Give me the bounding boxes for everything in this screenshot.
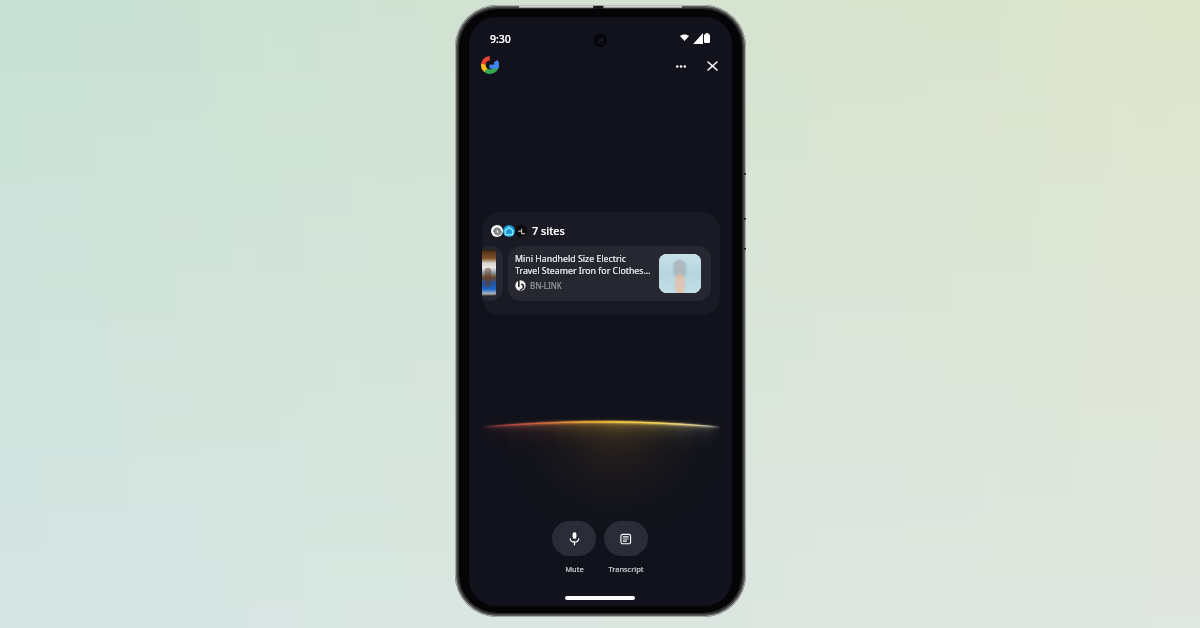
button[interactable]: Mute: [552, 521, 596, 556]
button[interactable]: Close: [698, 52, 726, 80]
staticText: Mute: [565, 564, 584, 574]
button[interactable]: Mini Handheld Size Electric: [508, 246, 711, 301]
staticText: Mini Handheld Size Electric: [515, 253, 627, 265]
button[interactable]: Transcript: [604, 521, 648, 556]
staticText: Travel Steamer Iron for Clothes…: [515, 265, 651, 277]
button[interactable]: More options: [667, 52, 695, 80]
staticText: 9:30: [490, 32, 511, 46]
staticText: 7 sites: [532, 223, 565, 238]
staticText: Transcript: [608, 564, 644, 574]
staticText: BN-LINK: [530, 280, 562, 291]
button[interactable]: Google: [476, 51, 504, 79]
button[interactable]: [482, 246, 503, 301]
